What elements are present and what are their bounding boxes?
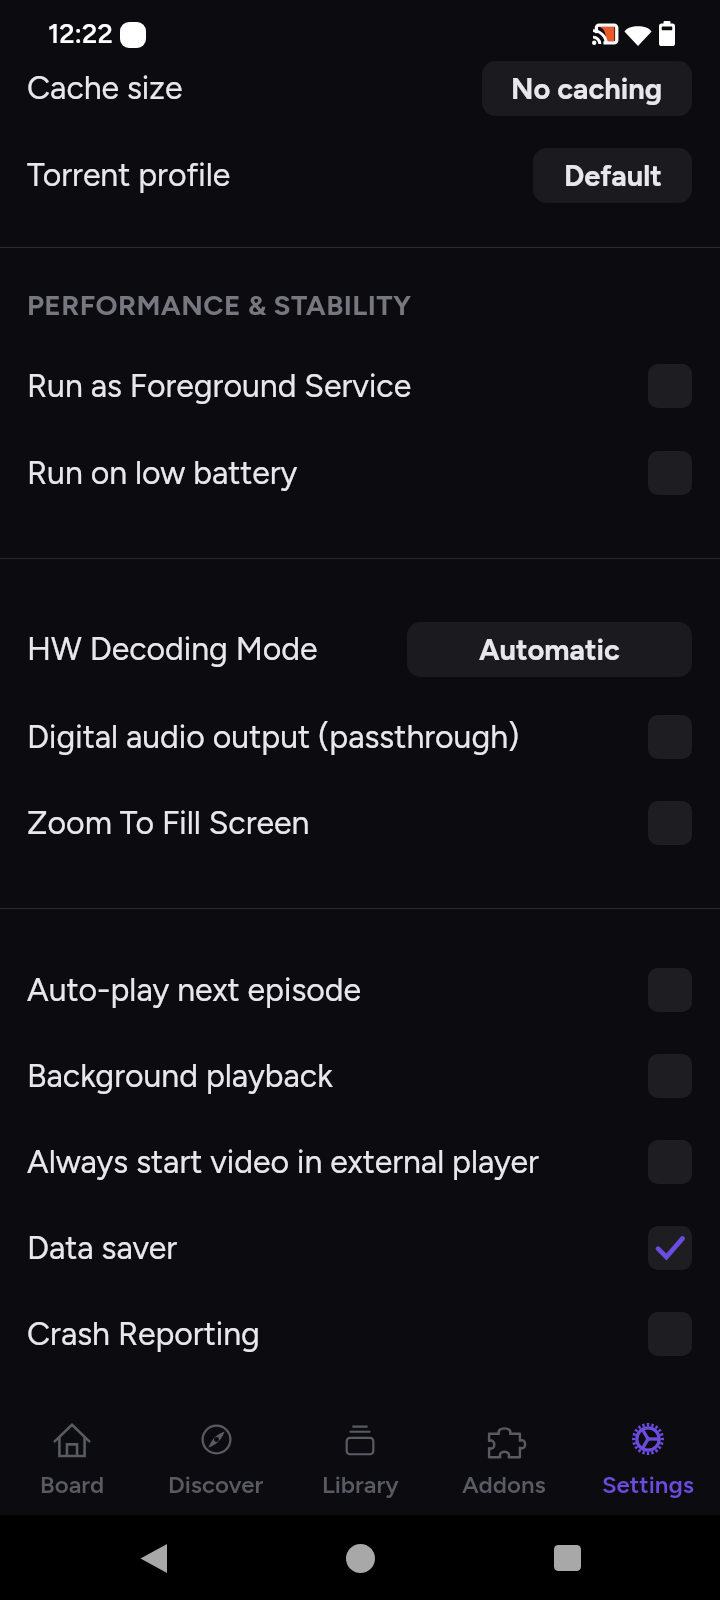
other: System navigation [0,1515,720,1600]
button[interactable]: Library [288,1412,432,1507]
button[interactable]: Zoom To Fill Screen [0,780,720,866]
button[interactable]: Background playback [0,1033,720,1119]
staticText: Addons [462,1470,546,1499]
staticText: PERFORMANCE & STABILITY [27,288,412,322]
staticText: Data saver [27,1229,178,1267]
staticText: Always start video in external player [27,1143,539,1181]
staticText: Crash Reporting [27,1315,260,1353]
staticText: Zoom To Fill Screen [27,804,310,842]
button[interactable]: Digital audio output (passthrough) [0,694,720,780]
other: Data saver [648,1226,692,1270]
staticText: Auto-play next episode [27,971,362,1009]
button[interactable]: Board [0,1412,144,1507]
staticText: Run on low battery [27,454,298,492]
button[interactable]: HW Decoding Mode [0,606,720,692]
staticText: Automatic [479,632,620,667]
staticText: Default [564,158,662,193]
staticText: Digital audio output (passthrough) [27,718,520,756]
staticText: 12:22 [48,17,113,49]
button[interactable]: Run as Foreground Service [0,343,720,429]
button[interactable]: Always start video in external player [0,1119,720,1205]
staticText: Board [40,1470,105,1499]
staticText: No caching [511,71,663,106]
staticText: Run as Foreground Service [27,367,412,405]
other: Run as Foreground Service [648,364,692,408]
button[interactable]: Addons [432,1412,576,1507]
staticText: Discover [168,1470,264,1499]
staticText: Background playback [27,1057,333,1095]
staticText: Library [322,1470,399,1499]
staticText: Cache size [27,69,183,107]
button[interactable]: Auto-play next episode [0,947,720,1033]
staticText: HW Decoding Mode [27,630,318,668]
button[interactable] [140,1544,167,1573]
button[interactable]: Settings [576,1412,720,1507]
other: Crash Reporting [648,1312,692,1356]
staticText: Torrent profile [27,156,231,194]
button[interactable] [346,1544,375,1573]
other: Run on low battery [648,451,692,495]
button[interactable]: Run on low battery [0,430,720,516]
button[interactable]: Discover [144,1412,288,1507]
button[interactable]: Data saver [0,1205,720,1291]
other: Always start video in external player [648,1140,692,1184]
other: Digital audio output (passthrough) [648,715,692,759]
other: Auto-play next episode [648,968,692,1012]
staticText: Settings [602,1470,694,1499]
other: Zoom To Fill Screen [648,801,692,845]
button[interactable]: Crash Reporting [0,1291,720,1377]
button[interactable]: Cache size [0,45,720,131]
other: Background playback [648,1054,692,1098]
button[interactable] [554,1545,581,1571]
button[interactable]: Torrent profile [0,132,720,218]
